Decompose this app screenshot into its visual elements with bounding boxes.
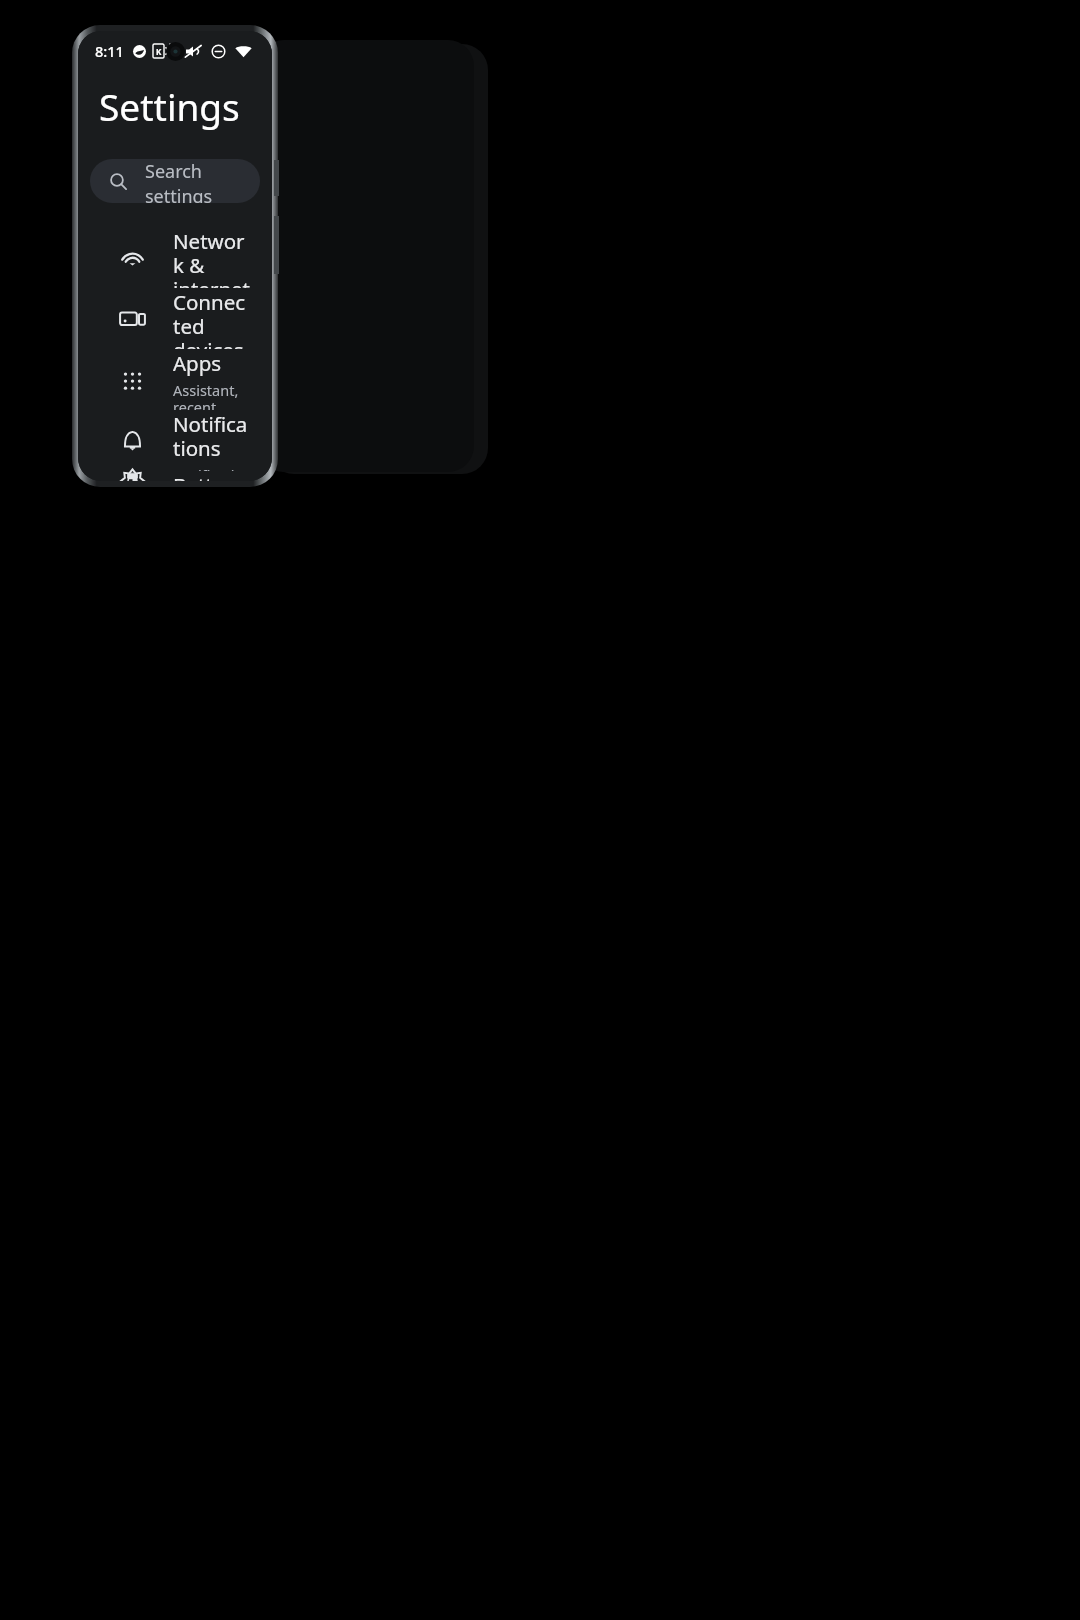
staticText: Notification history, conversations (173, 465, 252, 471)
button[interactable]: Network & internet (78, 227, 272, 288)
staticText: Network & internet (173, 227, 252, 288)
staticText: K (156, 46, 162, 57)
button[interactable]: Apps (78, 349, 272, 410)
button[interactable]: Battery (78, 471, 272, 481)
staticText: Connected devices (173, 288, 252, 349)
staticText: Assistant, recent apps, default apps (173, 380, 252, 410)
button[interactable]: Notifications (78, 410, 272, 471)
button[interactable]: Connected devices (78, 288, 272, 349)
staticText: Apps (173, 349, 222, 377)
button[interactable]: Search settings (90, 159, 260, 203)
staticText: 8:11 (95, 41, 124, 61)
staticText: Settings (99, 81, 240, 131)
staticText: Search settings (145, 159, 260, 203)
staticText: Notifications (173, 410, 252, 462)
staticText: Battery (173, 471, 244, 481)
